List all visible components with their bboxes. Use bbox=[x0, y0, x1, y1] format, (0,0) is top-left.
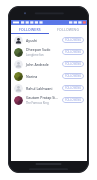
button[interactable]: Following bbox=[62, 97, 84, 103]
staticText: FOLLOWING bbox=[65, 74, 82, 78]
staticText: Longtime fan bbox=[26, 53, 44, 57]
button[interactable]: Following bbox=[62, 61, 84, 67]
staticText: FOLLOWING bbox=[65, 62, 82, 66]
staticText: FOLLOWING bbox=[65, 98, 82, 102]
button[interactable]: Rahul Lakhwani bbox=[11, 82, 87, 94]
staticText: Rahul Lakhwani bbox=[26, 86, 53, 91]
staticText: Ayushi bbox=[26, 38, 38, 43]
button[interactable]: Following bbox=[62, 85, 84, 91]
button[interactable]: Narina bbox=[11, 70, 87, 82]
button[interactable]: FOLLOWING bbox=[49, 25, 87, 33]
staticText: Gautam Pratap Singh bbox=[26, 95, 60, 100]
staticText: FOLLOWING bbox=[65, 86, 82, 90]
button[interactable]: Dheepan Sudo bbox=[11, 46, 87, 58]
button[interactable]: Gautam Pratap Singh bbox=[11, 94, 87, 106]
staticText: FOLLOWING bbox=[65, 50, 82, 54]
staticText: Dheepan Sudo bbox=[26, 47, 51, 52]
button[interactable]: John Andrade bbox=[11, 58, 87, 70]
button[interactable]: FOLLOWERS bbox=[11, 25, 49, 33]
staticText: FOLLOWERS bbox=[19, 27, 41, 32]
button[interactable]: Following bbox=[62, 49, 84, 55]
staticText: FOLLOWING bbox=[57, 27, 80, 32]
button[interactable]: Following bbox=[62, 73, 84, 79]
staticText: Narina bbox=[26, 74, 38, 79]
staticText: The Famous King bbox=[26, 101, 49, 105]
staticText: FOLLOWING bbox=[65, 38, 82, 42]
button[interactable]: Following bbox=[62, 37, 84, 43]
staticText: John Andrade bbox=[26, 62, 49, 67]
button[interactable]: Ayushi bbox=[11, 34, 87, 46]
